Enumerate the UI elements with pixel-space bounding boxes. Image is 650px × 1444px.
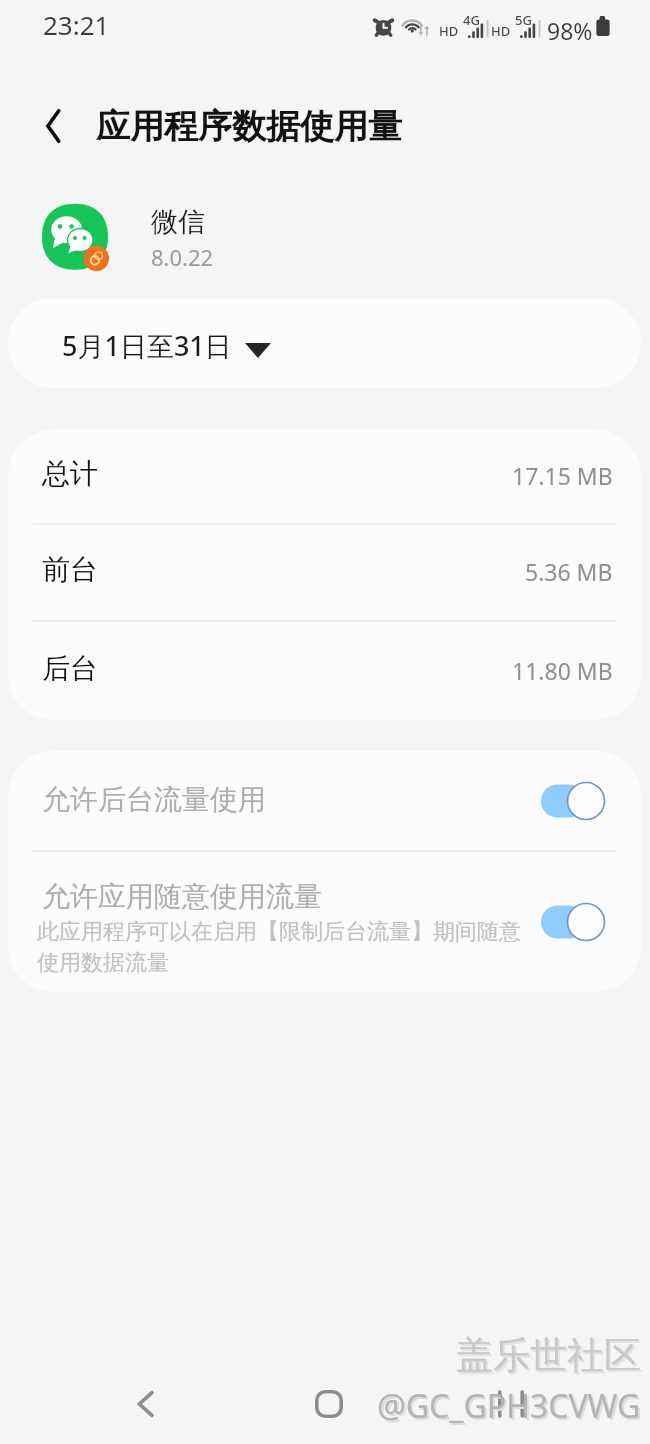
- staticText: 允许应用随意使用流量: [42, 879, 322, 914]
- staticText: 后台: [42, 651, 98, 686]
- button[interactable]: 总计: [8, 430, 641, 523]
- staticText: 11.80 MB: [512, 655, 613, 686]
- staticText: 前台: [42, 552, 98, 587]
- button[interactable]: 后台: [8, 622, 641, 720]
- staticText: 盖乐世社区: [456, 1332, 641, 1379]
- staticText: 总计: [42, 456, 98, 491]
- staticText: @GC_GPH3CVWG: [377, 1384, 641, 1428]
- button[interactable]: [541, 902, 605, 942]
- staticText: @GC_GPH3CVWG: [379, 1386, 643, 1430]
- button[interactable]: 允许后台流量使用: [8, 751, 641, 850]
- button[interactable]: 前台: [8, 525, 641, 620]
- button[interactable]: 5月1日至31日: [8, 298, 641, 388]
- staticText: 此应用程序可以在启用【限制后台流量】期间随意使用数据流量: [37, 918, 529, 976]
- staticText: HD: [439, 22, 459, 40]
- button[interactable]: 允许应用随意使用流量: [8, 852, 641, 992]
- staticText: 5G: [515, 11, 532, 29]
- button[interactable]: Back: [29, 102, 77, 150]
- staticText: 5.36 MB: [525, 556, 613, 587]
- button[interactable]: Back: [106, 1364, 186, 1444]
- staticText: 4G: [463, 11, 480, 29]
- staticText: 98%: [547, 15, 593, 46]
- staticText: 允许后台流量使用: [42, 782, 266, 817]
- button[interactable]: Recents: [471, 1364, 551, 1444]
- staticText: 5月1日至31日: [62, 327, 232, 364]
- button[interactable]: [541, 781, 605, 821]
- staticText: 17.15 MB: [512, 460, 613, 491]
- staticText: 盖乐世社区: [458, 1334, 643, 1381]
- staticText: 微信: [151, 205, 205, 239]
- staticText: 应用程序数据使用量: [96, 105, 402, 148]
- staticText: 23:21: [43, 7, 110, 42]
- staticText: 8.0.22: [151, 242, 214, 272]
- button[interactable]: Home: [289, 1364, 369, 1444]
- staticText: HD: [491, 22, 511, 40]
